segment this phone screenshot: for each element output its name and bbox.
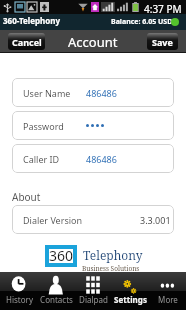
button[interactable]: Dialer Version bbox=[12, 205, 174, 234]
staticText: Account bbox=[68, 33, 118, 51]
staticText: About bbox=[12, 190, 41, 204]
staticText: Cancel bbox=[12, 36, 42, 48]
staticText: Telephony bbox=[83, 247, 143, 263]
staticText: Password bbox=[23, 120, 64, 132]
staticText: 360 bbox=[49, 246, 74, 265]
button[interactable]: Cancel bbox=[8, 33, 45, 50]
button[interactable]: History bbox=[0, 272, 38, 310]
button[interactable]: More bbox=[149, 272, 186, 310]
button[interactable]: Dialpad bbox=[75, 272, 112, 310]
button[interactable]: Settings bbox=[112, 272, 149, 310]
staticText: 3.3.001 bbox=[140, 214, 171, 226]
staticText: Business Solutions bbox=[82, 264, 140, 273]
staticText: 4:37 PM bbox=[144, 2, 182, 16]
staticText: Balance: 6.05 USD bbox=[111, 17, 173, 27]
staticText: Dialer Version bbox=[23, 214, 83, 226]
button[interactable]: Save bbox=[147, 33, 178, 50]
staticText: User Name bbox=[23, 87, 71, 99]
staticText: History bbox=[6, 294, 33, 305]
staticText: Caller ID bbox=[23, 153, 60, 165]
staticText: Contacts bbox=[40, 294, 73, 305]
staticText: 360-Telephony bbox=[3, 15, 60, 26]
staticText: More bbox=[158, 294, 178, 305]
button[interactable]: User Name bbox=[12, 78, 174, 107]
button[interactable]: Caller ID bbox=[12, 144, 174, 173]
button[interactable]: Password bbox=[12, 111, 174, 140]
staticText: 486486 bbox=[86, 87, 117, 99]
staticText: 486486 bbox=[86, 153, 117, 165]
staticText: Save bbox=[152, 36, 173, 48]
staticText: Settings bbox=[114, 294, 147, 305]
button[interactable]: Contacts bbox=[38, 272, 75, 310]
staticText: Dialpad bbox=[79, 294, 108, 305]
